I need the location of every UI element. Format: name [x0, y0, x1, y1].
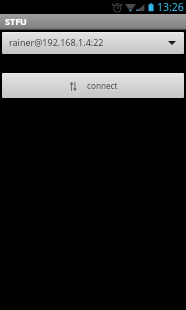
staticText: connect	[87, 80, 118, 91]
staticText: rainer@192.168.1.4:22	[9, 36, 104, 48]
staticText: STFU	[5, 15, 27, 27]
staticText: 13:26	[157, 0, 184, 14]
button[interactable]: rainer@192.168.1.4:22	[2, 32, 184, 54]
button[interactable]: connect	[2, 73, 184, 98]
